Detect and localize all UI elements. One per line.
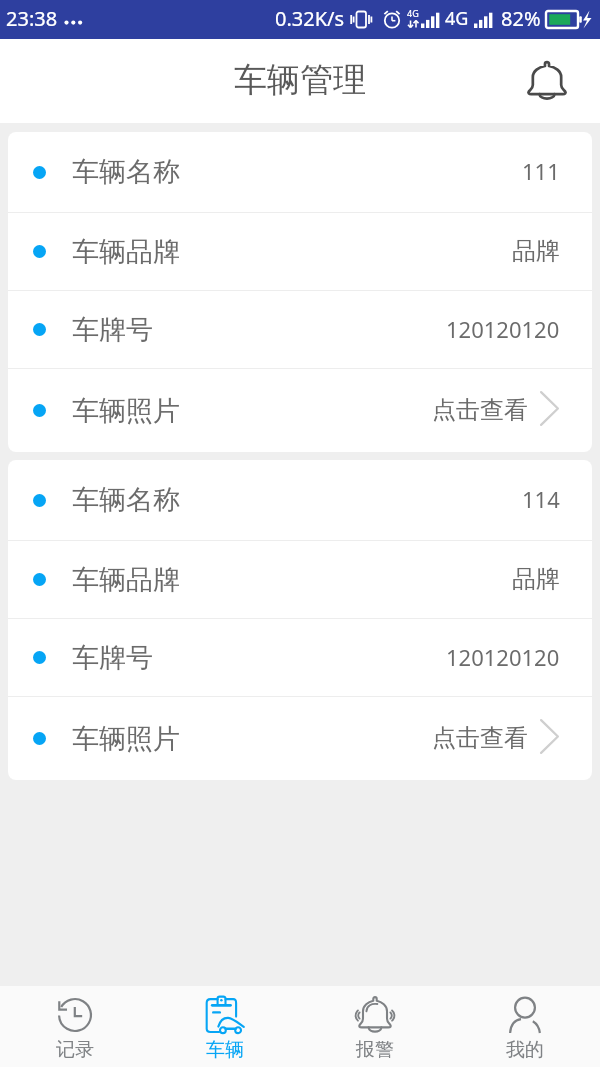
staticText: 品牌 [512,564,560,594]
staticText: 111 [522,156,560,186]
staticText: 114 [522,484,560,514]
staticText: 0.32K/s [275,5,345,32]
staticText: 点击查看 [432,395,528,425]
staticText: 车辆 [206,1038,244,1062]
staticText: 4G [445,6,469,31]
button[interactable]: 车辆品牌 [8,213,592,290]
staticText: 报警 [356,1038,394,1062]
staticText: 车辆名称 [72,155,180,189]
button[interactable]: Notifications [519,53,575,109]
button[interactable]: 车牌号 [8,291,592,368]
staticText: 82% [501,5,541,32]
staticText: 车辆照片 [72,394,180,428]
staticText: 车辆名称 [72,483,180,517]
staticText: 23:38 [6,5,58,32]
staticText: 车辆管理 [234,59,366,101]
staticText: 120120120 [446,642,560,672]
staticText: 车辆品牌 [72,235,180,269]
staticText: 点击查看 [432,723,528,753]
staticText: 记录 [56,1038,94,1062]
button[interactable]: 车辆照片 [8,369,592,452]
staticText: 品牌 [512,236,560,266]
button[interactable]: 记录 [0,986,150,1067]
staticText: 120120120 [446,314,560,344]
button[interactable]: 车辆 [150,986,300,1067]
button[interactable]: 车辆品牌 [8,541,592,618]
staticText: 我的 [506,1038,544,1062]
staticText: 车牌号 [72,641,153,675]
button[interactable]: 车牌号 [8,619,592,696]
button[interactable]: 车辆名称 [8,460,592,540]
staticText: 车辆品牌 [72,563,180,597]
staticText: 4G [407,7,419,19]
staticText: 车牌号 [72,313,153,347]
staticText: 车辆照片 [72,722,180,756]
button[interactable]: 我的 [450,986,600,1067]
button[interactable]: 报警 [300,986,450,1067]
button[interactable]: 车辆照片 [8,697,592,780]
button[interactable]: 车辆名称 [8,132,592,212]
